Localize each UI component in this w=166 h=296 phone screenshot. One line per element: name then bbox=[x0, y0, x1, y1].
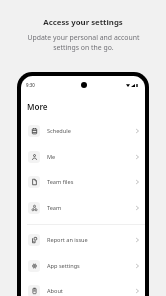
staticText: Team bbox=[47, 204, 62, 212]
button[interactable]: About bbox=[21, 278, 145, 296]
button[interactable]: App settings bbox=[21, 253, 145, 279]
staticText: 9:30 bbox=[26, 82, 35, 88]
staticText: Update your personal and account setting… bbox=[27, 33, 140, 52]
button[interactable]: Team bbox=[21, 195, 145, 221]
button[interactable]: Me bbox=[21, 144, 145, 170]
staticText: Schedule bbox=[47, 127, 71, 135]
button[interactable]: Schedule bbox=[21, 118, 145, 144]
staticText: Report an issue bbox=[47, 236, 88, 244]
staticText: Me bbox=[47, 153, 56, 161]
staticText: About bbox=[47, 287, 63, 295]
button[interactable]: Report an issue bbox=[21, 227, 145, 253]
staticText: More bbox=[27, 101, 48, 112]
staticText: Team files bbox=[47, 178, 74, 186]
staticText: Access your settings bbox=[43, 17, 123, 28]
button[interactable]: Team files bbox=[21, 169, 145, 195]
staticText: App settings bbox=[47, 262, 80, 270]
